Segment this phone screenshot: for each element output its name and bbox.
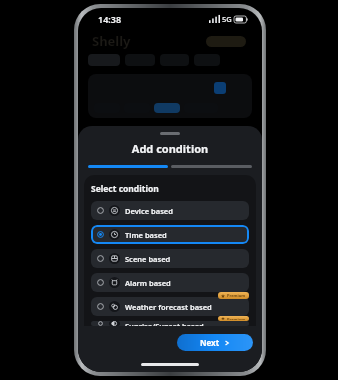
- staticText: Next: [200, 337, 220, 348]
- staticText: Select condition: [91, 183, 159, 195]
- button[interactable]: Weather forecast based: [91, 297, 249, 316]
- button[interactable]: Time based: [91, 225, 249, 244]
- staticText: 5G: [222, 14, 232, 24]
- staticText: Time based: [125, 230, 167, 240]
- button[interactable]: Alarm based: [91, 273, 249, 292]
- button[interactable]: Sunrise/Sunset based: [91, 321, 249, 326]
- button[interactable]: Next: [177, 334, 253, 351]
- staticText: Sunrise/Sunset based: [125, 321, 204, 326]
- staticText: Weather forecast based: [125, 302, 212, 312]
- button[interactable]: Device based: [91, 201, 249, 220]
- staticText: Device based: [125, 206, 173, 216]
- staticText: 14:38: [98, 13, 122, 25]
- button[interactable]: Scene based: [91, 249, 249, 268]
- staticText: Shelly: [92, 32, 131, 50]
- staticText: Scene based: [125, 254, 171, 264]
- staticText: Alarm based: [125, 278, 171, 288]
- staticText: Premium: [227, 317, 246, 320]
- staticText: Add condition: [78, 141, 262, 156]
- staticText: Premium: [227, 293, 246, 298]
